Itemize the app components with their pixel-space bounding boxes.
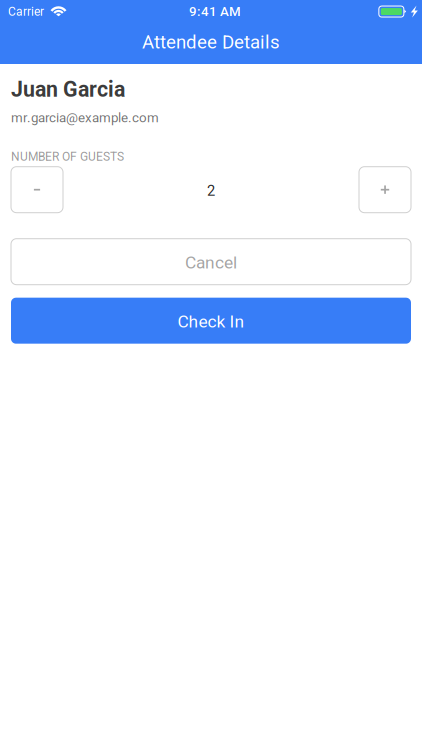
staticText: Cancel	[185, 252, 237, 273]
staticText: 2	[207, 182, 215, 199]
button[interactable]: Check In	[11, 298, 411, 344]
staticText: mr.garcia@example.com	[11, 110, 159, 126]
staticText: 9:41 AM	[189, 4, 241, 19]
staticText: Carrier	[8, 4, 44, 19]
button[interactable]: Remove guest	[11, 167, 63, 213]
button[interactable]: Cancel	[11, 239, 411, 285]
staticText: Check In	[177, 311, 244, 332]
staticText: NUMBER OF GUESTS	[11, 150, 124, 164]
button[interactable]: Add guest	[359, 167, 411, 213]
staticText: Juan Garcia	[11, 77, 125, 102]
staticText: Attendee Details	[142, 31, 280, 53]
